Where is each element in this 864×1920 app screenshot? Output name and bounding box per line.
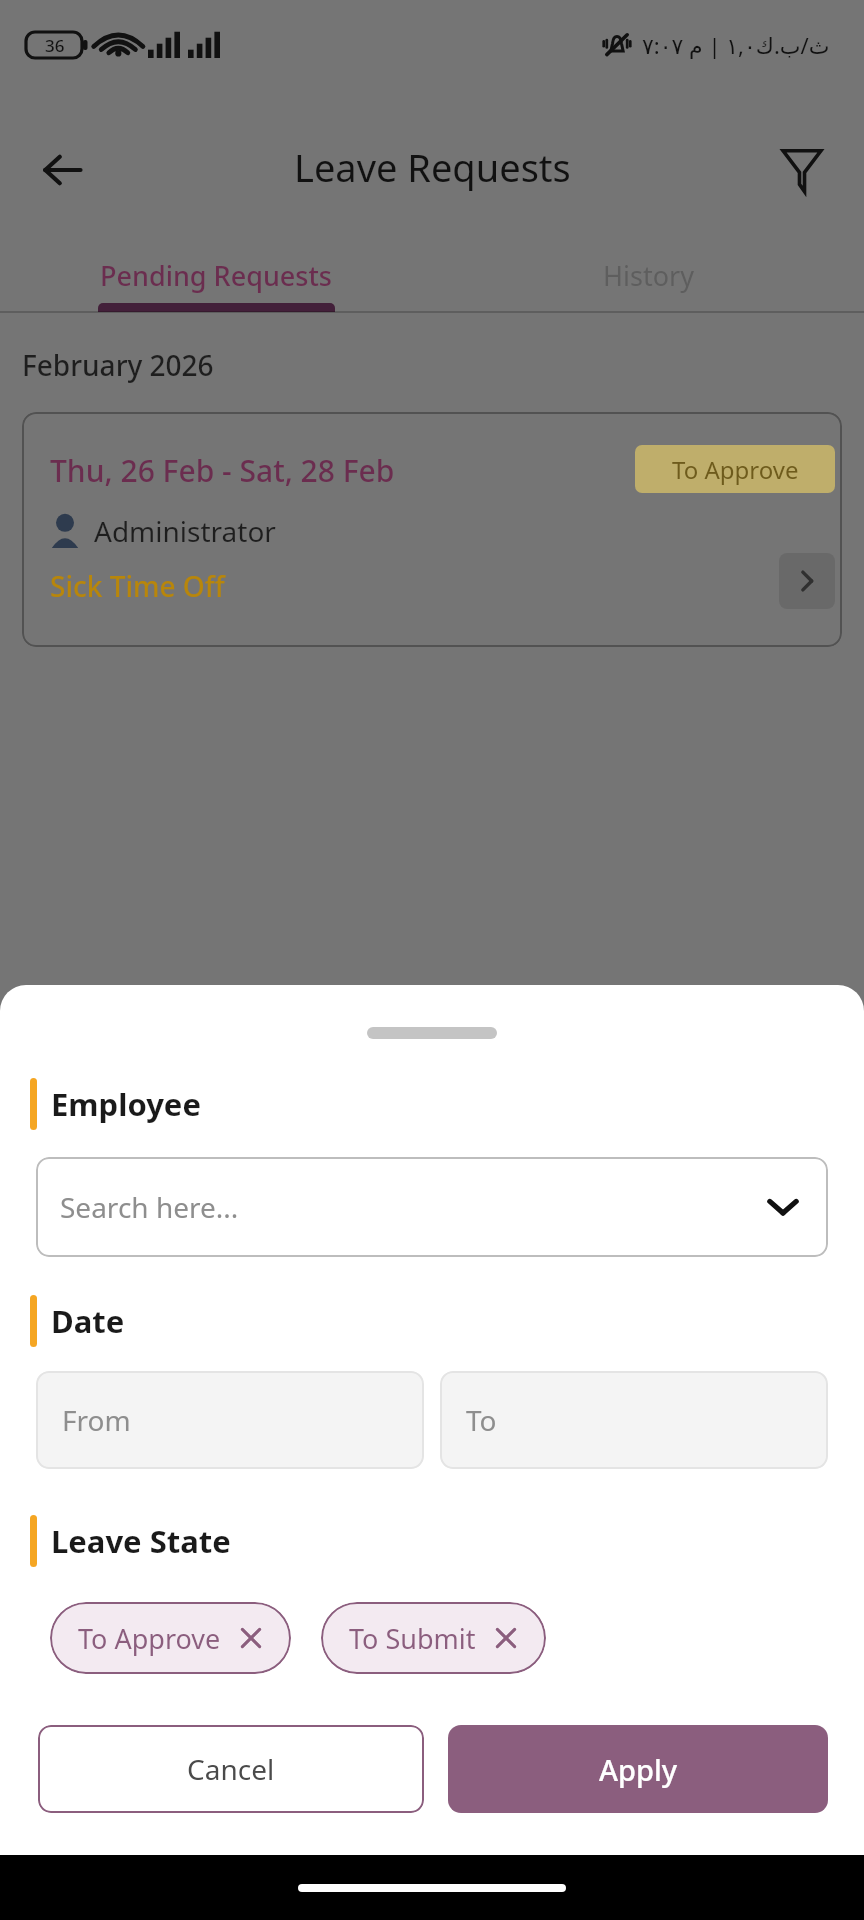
- button[interactable]: Search here...: [36, 1157, 828, 1257]
- button[interactable]: To Approve: [50, 1602, 291, 1674]
- staticText: Pending Requests: [100, 257, 332, 294]
- staticText: 36: [45, 34, 65, 57]
- staticText: From: [62, 1401, 131, 1439]
- button[interactable]: Thu, 26 Feb - Sat, 28 Feb: [22, 412, 842, 647]
- staticText: Leave Requests: [294, 141, 571, 193]
- staticText: Administrator: [94, 512, 276, 550]
- staticText: Search here...: [60, 1188, 239, 1226]
- button[interactable]: History: [432, 250, 864, 312]
- staticText: To Approve: [78, 1620, 221, 1657]
- button[interactable]: Open request: [779, 553, 835, 609]
- button[interactable]: To: [440, 1371, 828, 1469]
- button[interactable]: Pending Requests: [0, 250, 432, 312]
- staticText: Date: [51, 1300, 125, 1342]
- button[interactable]: From: [36, 1371, 424, 1469]
- staticText: To Submit: [349, 1620, 476, 1657]
- staticText: Cancel: [187, 1750, 275, 1788]
- staticText: ث/ب.ك١,٠ | م ٧:٠٧: [642, 30, 830, 60]
- staticText: To Approve: [672, 453, 799, 486]
- staticText: To: [466, 1401, 497, 1439]
- button[interactable]: Cancel: [38, 1725, 424, 1813]
- button[interactable]: Back: [26, 134, 98, 206]
- staticText: Leave State: [51, 1520, 231, 1562]
- button[interactable]: Filter: [766, 134, 838, 206]
- staticText: February 2026: [22, 346, 214, 384]
- staticText: History: [603, 257, 694, 294]
- staticText: Employee: [51, 1083, 201, 1125]
- staticText: Sick Time Off: [50, 567, 225, 605]
- button[interactable]: To Submit: [321, 1602, 546, 1674]
- staticText: Thu, 26 Feb - Sat, 28 Feb: [50, 450, 395, 491]
- button[interactable]: Apply: [448, 1725, 828, 1813]
- staticText: Apply: [599, 1750, 678, 1789]
